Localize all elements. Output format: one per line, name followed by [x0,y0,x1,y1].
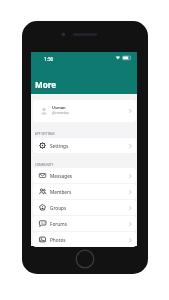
button[interactable]: Groups [33,200,136,215]
button[interactable]: Forums [33,216,136,231]
staticText: More [35,79,57,90]
staticText: Members [50,189,72,195]
staticText: COMMUNITY [35,163,54,167]
button[interactable]: Photos [33,232,136,247]
staticText: APP SETTINGS [35,132,55,136]
staticText: 1:56 [44,56,54,62]
button[interactable]: Messages [33,168,136,183]
button[interactable]: Members [33,184,136,199]
button[interactable]: Settings [33,138,136,153]
staticText: Forums [50,221,67,227]
staticText: Usman [52,105,66,110]
staticText: Photos [50,237,66,243]
staticText: Groups [50,205,67,211]
staticText: Settings [50,143,69,149]
staticText: @usmanbvp [52,111,69,115]
staticText: Messages [50,173,73,179]
button[interactable]: Usman [33,100,136,122]
